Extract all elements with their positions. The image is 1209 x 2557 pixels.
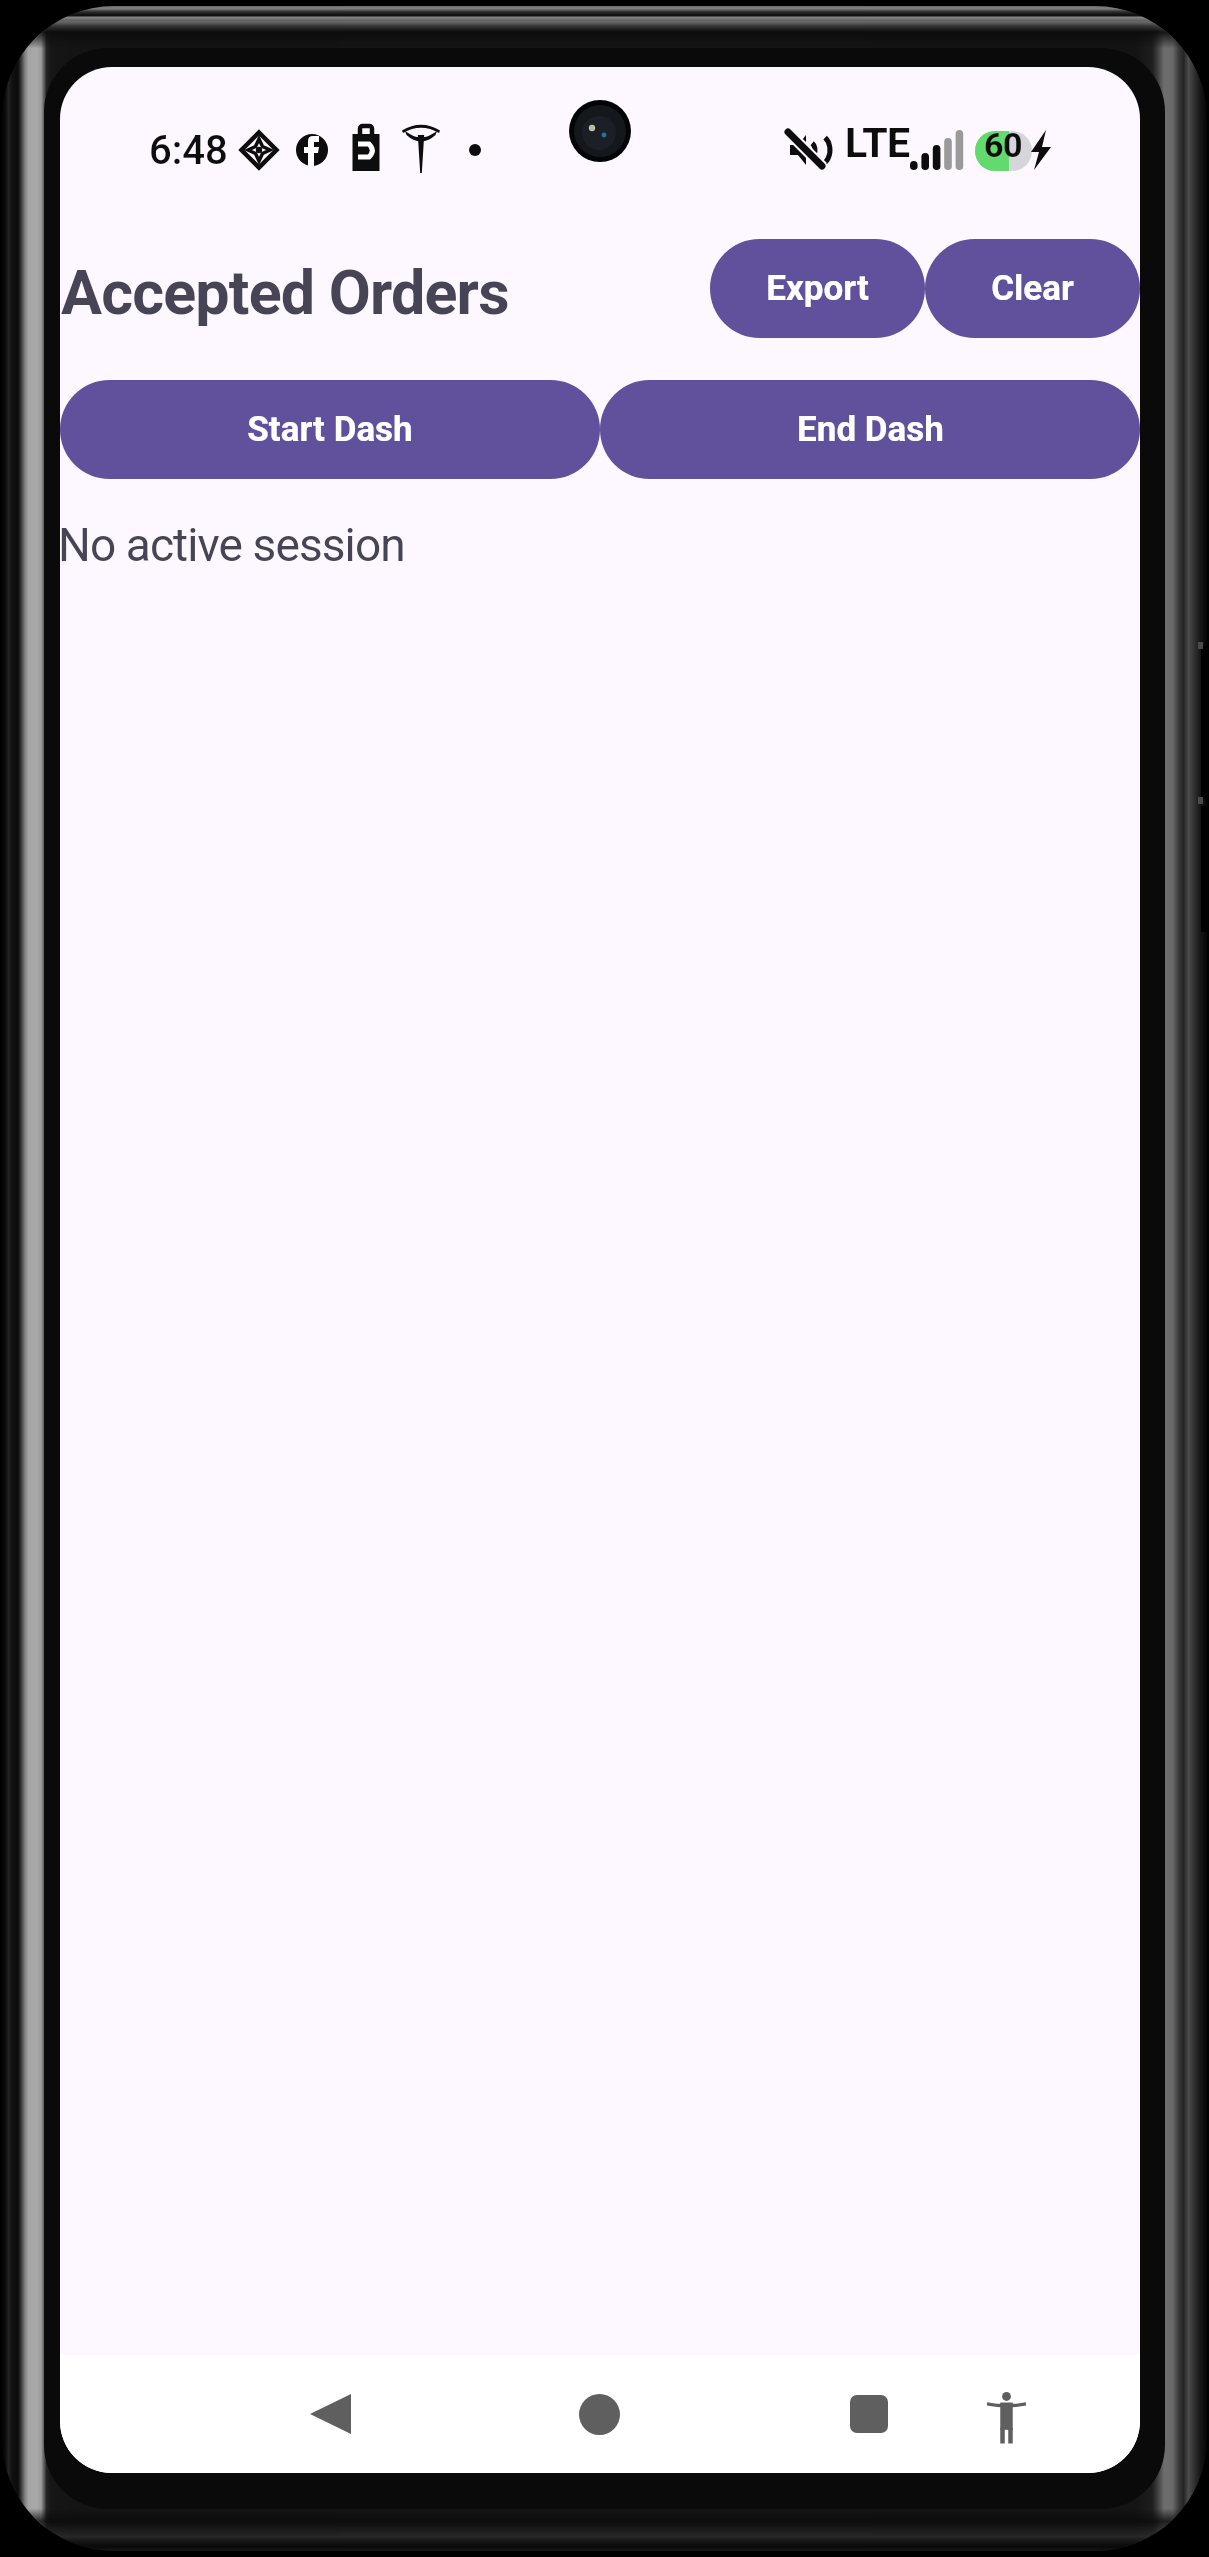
- staticText: 6:48: [149, 127, 228, 174]
- staticText: LTE: [845, 119, 910, 167]
- staticText: 60: [984, 125, 1023, 165]
- staticText: Export: [766, 268, 869, 309]
- staticText: Clear: [991, 268, 1074, 309]
- button[interactable]: Accessibility: [946, 2355, 1066, 2473]
- button[interactable]: Start Dash: [60, 380, 600, 479]
- button[interactable]: Clear: [925, 239, 1140, 338]
- staticText: Start Dash: [247, 409, 413, 450]
- button[interactable]: Recent apps: [809, 2355, 929, 2473]
- staticText: Accepted Orders: [61, 257, 509, 328]
- staticText: No active session: [60, 518, 405, 572]
- staticText: End Dash: [797, 409, 944, 450]
- button[interactable]: End Dash: [600, 380, 1140, 479]
- button[interactable]: Home: [539, 2355, 659, 2473]
- button[interactable]: Export: [710, 239, 925, 338]
- button[interactable]: Back: [270, 2355, 390, 2473]
